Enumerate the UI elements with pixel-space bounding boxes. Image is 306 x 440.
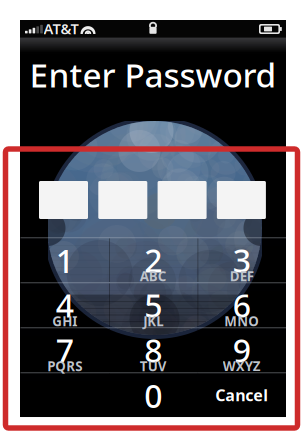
staticText: 8 (144, 329, 162, 371)
button[interactable]: 6 MNO (197, 282, 286, 327)
staticText: 4 (56, 284, 74, 326)
staticText: Enter Password (29, 52, 276, 97)
staticText: Cancel (215, 384, 268, 406)
button[interactable]: 8 TUV (109, 327, 197, 372)
button[interactable]: 5 JKL (109, 282, 197, 327)
button[interactable]: 2 ABC (109, 237, 197, 282)
staticText: 5 (144, 284, 162, 326)
staticText: TUV (140, 357, 167, 375)
button[interactable]: Cancel (197, 372, 286, 417)
button[interactable]: 9 WXYZ (197, 327, 286, 372)
staticText: GHI (52, 312, 77, 330)
staticText: 6 (233, 284, 251, 326)
button[interactable]: 7 PQRS (20, 327, 109, 372)
staticText: AT&T (43, 19, 78, 38)
button[interactable]: 4 GHI (20, 282, 109, 327)
button[interactable]: 3 DEF (197, 237, 286, 282)
staticText: 3 (233, 239, 251, 281)
staticText: MNO (224, 312, 259, 330)
staticText: 7 (56, 329, 74, 371)
staticText: WXYZ (223, 357, 261, 375)
staticText: ABC (140, 267, 167, 285)
staticText: PQRS (47, 357, 82, 375)
staticText: JKL (143, 312, 163, 330)
staticText: 9 (233, 329, 251, 371)
staticText: 2 (144, 239, 162, 281)
staticText: 1 (56, 239, 74, 282)
button[interactable]: 0 (109, 372, 197, 417)
staticText: DEF (230, 267, 254, 285)
button[interactable]: blank (20, 372, 109, 417)
button[interactable]: 1 (20, 237, 109, 282)
staticText: 0 (144, 374, 162, 417)
